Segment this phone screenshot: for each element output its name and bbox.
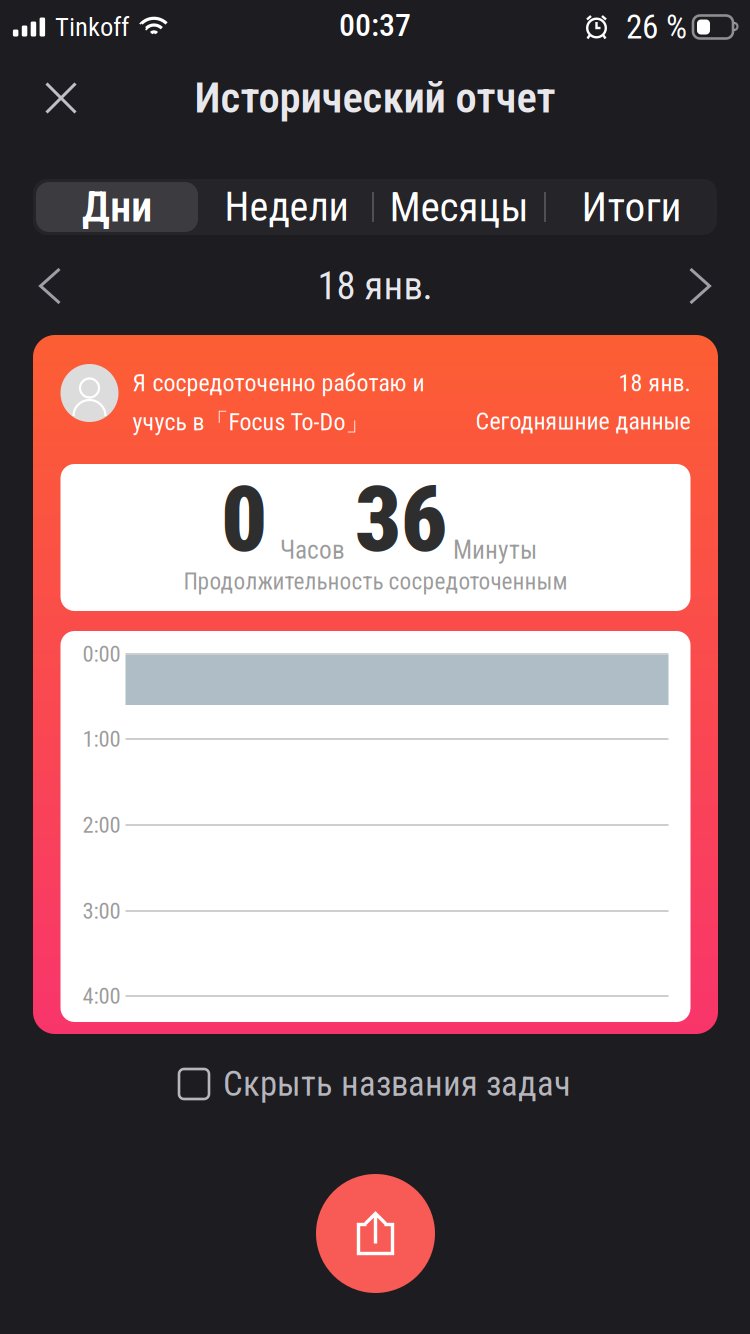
staticText: Месяцы bbox=[389, 183, 528, 231]
staticText: Итоги bbox=[581, 183, 681, 231]
button[interactable]: Share bbox=[316, 1174, 435, 1293]
staticText: Минуты bbox=[453, 535, 537, 565]
button[interactable]: Next day bbox=[669, 255, 731, 317]
staticText: Недели bbox=[224, 184, 348, 230]
staticText: 2:00 bbox=[82, 812, 120, 838]
staticText: Часов bbox=[280, 535, 345, 565]
staticText: 18 янв. bbox=[317, 263, 432, 309]
staticText: Исторический отчет bbox=[194, 73, 555, 123]
staticText: 4:00 bbox=[82, 983, 120, 1009]
staticText: 18 янв. bbox=[618, 369, 690, 397]
staticText: Я сосредоточенно работаю и bbox=[132, 369, 424, 397]
staticText: 26 % bbox=[626, 7, 687, 47]
staticText: учусь в「Focus To-Do」 bbox=[132, 407, 369, 437]
staticText: 0 bbox=[221, 467, 267, 573]
staticText: Дни bbox=[82, 182, 152, 232]
staticText: Скрыть названия задач bbox=[223, 1064, 571, 1104]
staticText: 0:00 bbox=[82, 641, 120, 667]
staticText: Сегодняшние данные bbox=[475, 407, 690, 435]
button[interactable]: Close bbox=[30, 67, 92, 129]
button[interactable]: Скрыть названия задач bbox=[0, 1059, 750, 1109]
staticText: 00:37 bbox=[339, 6, 411, 44]
staticText: 36 bbox=[355, 467, 447, 573]
staticText: 1:00 bbox=[82, 726, 120, 752]
button[interactable]: Недели bbox=[201, 179, 372, 235]
staticText: Tinkoff bbox=[55, 11, 129, 43]
button[interactable]: Месяцы bbox=[374, 179, 544, 235]
button[interactable]: Previous day bbox=[19, 255, 81, 317]
button[interactable]: Итоги bbox=[546, 179, 717, 235]
staticText: 3:00 bbox=[82, 898, 120, 924]
button[interactable]: Дни bbox=[33, 179, 201, 235]
staticText: Продолжительность сосредоточенным bbox=[183, 568, 567, 595]
